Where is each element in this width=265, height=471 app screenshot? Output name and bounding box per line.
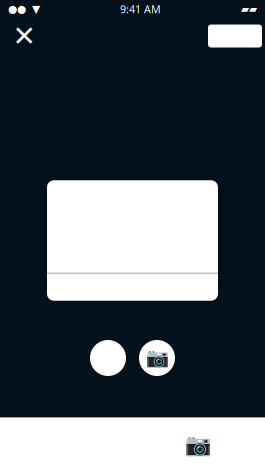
button[interactable]: Gallery [90,340,126,376]
button[interactable]: Camera [132,418,265,471]
staticText: 9:41 AM [120,2,161,16]
staticText: 📷 [185,432,212,457]
button[interactable]: Take photo [139,340,175,376]
button[interactable]: Close [6,18,42,54]
button[interactable]: SHARE [208,24,262,47]
staticText: ▰▰ [241,3,257,15]
staticText: ✕ [12,20,35,52]
staticText: 📷 [145,347,168,369]
button[interactable]: OK [47,274,218,301]
staticText: ●● ▼ [8,3,40,15]
